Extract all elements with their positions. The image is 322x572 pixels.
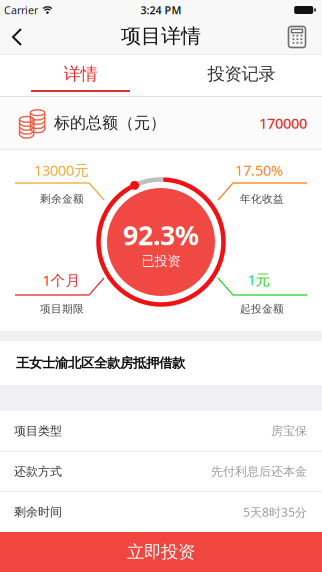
staticText: 项目类型	[14, 423, 62, 438]
staticText: 立即投资	[127, 541, 195, 563]
staticText: 起投金额	[240, 302, 284, 315]
staticText: 还款方式	[14, 464, 62, 479]
staticText: 剩余时间	[14, 505, 62, 519]
staticText: 1个月	[42, 270, 80, 290]
staticText: 项目期限	[40, 302, 84, 315]
staticText: 17.50%	[235, 160, 283, 180]
staticText: 已投资	[141, 253, 180, 269]
staticText: 170000	[259, 113, 307, 133]
button[interactable]: 投资记录	[161, 56, 322, 92]
staticText: 3:24 PM	[140, 3, 181, 17]
staticText: Carrier	[4, 3, 38, 17]
button[interactable]: 详情	[0, 56, 161, 92]
staticText: 5天8时35分	[243, 504, 307, 520]
staticText: 房宝保	[271, 423, 307, 438]
staticText: 先付利息后还本金	[211, 464, 307, 479]
staticText: 年化收益	[240, 192, 284, 205]
button[interactable]: Calculator	[285, 25, 309, 49]
button[interactable]: Back	[10, 26, 32, 48]
staticText: 投资记录	[207, 63, 275, 85]
staticText: 剩余金额	[40, 192, 84, 205]
staticText: 王女士渝北区全款房抵押借款	[16, 355, 185, 371]
staticText: 1元	[247, 270, 270, 289]
staticText: 详情	[63, 63, 97, 85]
button[interactable]: 立即投资	[0, 532, 322, 572]
staticText: 92.3%	[123, 217, 199, 253]
staticText: 13000元	[34, 160, 89, 180]
staticText: 项目详情	[121, 24, 201, 48]
staticText: 标的总额（元）	[54, 113, 166, 133]
